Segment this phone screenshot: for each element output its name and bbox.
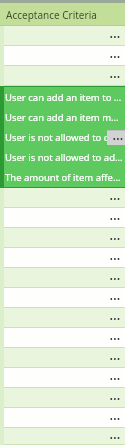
button[interactable]: [0, 188, 125, 208]
button[interactable]: [0, 428, 125, 445]
button[interactable]: [0, 208, 125, 228]
button[interactable]: More options: [107, 130, 125, 145]
button[interactable]: [0, 268, 125, 288]
button[interactable]: [0, 408, 125, 428]
staticText: User can add an item multiple times: [5, 111, 123, 124]
button[interactable]: [0, 308, 125, 328]
button[interactable]: [0, 388, 125, 408]
button[interactable]: The amount of item affects total: [0, 167, 125, 187]
button[interactable]: [0, 328, 125, 348]
staticText: The amount of item affects total: [5, 171, 123, 184]
button[interactable]: [0, 66, 125, 86]
button[interactable]: [0, 228, 125, 248]
button[interactable]: User can add an item to the cart: [0, 87, 125, 107]
button[interactable]: [0, 368, 125, 388]
button[interactable]: User is not allowed to add zero items: [0, 147, 125, 167]
button[interactable]: [0, 348, 125, 368]
button[interactable]: [0, 46, 125, 66]
staticText: User can add an item to the cart: [5, 91, 123, 104]
button[interactable]: User can add an item multiple times: [0, 107, 125, 127]
staticText: User is not allowed to add zero items: [5, 151, 123, 164]
button[interactable]: Acceptance Criteria: [0, 3, 125, 26]
button[interactable]: [0, 288, 125, 308]
button[interactable]: User is not allowed to checkout empty: [0, 127, 125, 147]
staticText: Acceptance Criteria: [6, 8, 97, 22]
button[interactable]: [0, 248, 125, 268]
button[interactable]: [0, 26, 125, 46]
staticText: User is not allowed to checkout empty: [5, 131, 123, 144]
